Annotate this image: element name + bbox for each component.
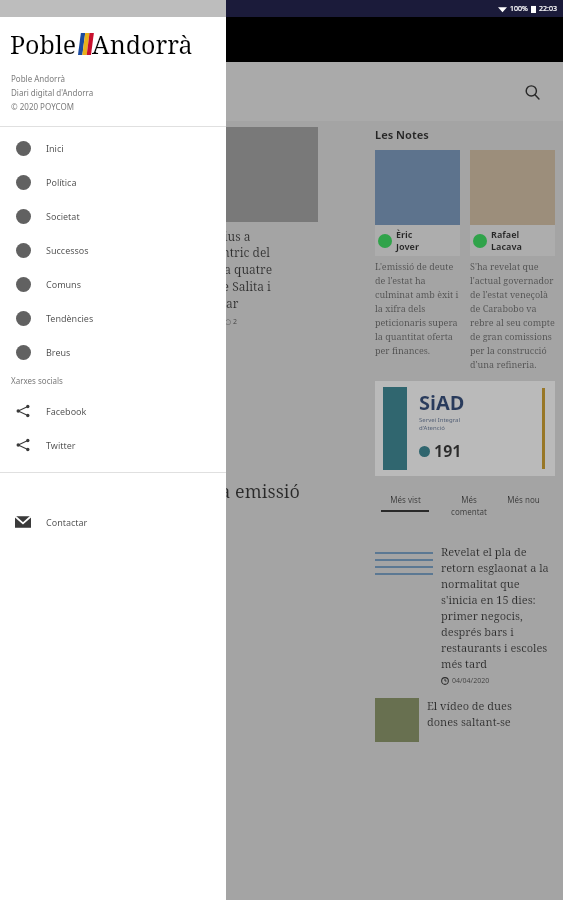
staticText: t'interessa interessos xyxy=(14,400,44,417)
staticText: Més comentat xyxy=(451,494,487,518)
staticText: Les Notes xyxy=(375,127,429,142)
staticText: Successos xyxy=(46,244,89,256)
staticText: Espanya aprova una nova emissió per fina… xyxy=(8,238,135,292)
button[interactable]: Breus xyxy=(0,335,226,369)
staticText: Facebook xyxy=(46,405,87,417)
button[interactable]: Més nou xyxy=(501,490,546,509)
staticText: Andorrà xyxy=(92,27,193,61)
button[interactable]: Search xyxy=(515,75,549,109)
button[interactable]: Contactar xyxy=(0,505,226,539)
button[interactable]: Societat xyxy=(0,199,226,233)
staticText: © 2020 POYCOM xyxy=(11,101,74,112)
staticText: Més vist xyxy=(390,494,421,505)
staticText: ○ 2 xyxy=(225,317,237,327)
button[interactable]: Rafael Lacava xyxy=(470,150,555,371)
staticText: Xarxes socials xyxy=(11,375,63,386)
button[interactable]: Èric Jover xyxy=(375,150,460,357)
staticText: SiAD xyxy=(419,389,465,416)
button[interactable]: Facebook xyxy=(0,394,226,428)
staticText: Diari digital d'Andorra xyxy=(11,87,94,98)
staticText: Poble Andorrà xyxy=(11,73,66,84)
button[interactable]: INTERESSA xyxy=(8,367,183,449)
button[interactable]: Política xyxy=(0,165,226,199)
staticText: Breus xyxy=(46,346,71,358)
staticText: Èric Jover xyxy=(396,228,419,253)
staticText: Inici xyxy=(46,142,64,154)
staticText: Espanya aprova una nova emissió per fina… xyxy=(8,479,300,530)
button[interactable]: Twitter xyxy=(0,428,226,462)
staticText: El vídeo de dues dones saltant-se xyxy=(427,698,512,729)
staticText: Política xyxy=(46,176,77,188)
staticText: Contactar xyxy=(46,516,88,528)
staticText: INTERESSA xyxy=(14,379,84,397)
button[interactable]: Comuns xyxy=(0,267,226,301)
staticText: 04/04/2020 xyxy=(452,676,490,686)
staticText: Revelat el pla de retorn esglaonat a la … xyxy=(441,544,555,671)
button[interactable]: SiAD xyxy=(375,381,555,476)
staticText: S'ha revelat que l'actual governador de … xyxy=(470,260,555,371)
staticText: Cinc positius a l'Hotel Cèntric del qual… xyxy=(168,228,273,312)
staticText: Societat xyxy=(46,210,80,222)
staticText: Twitter xyxy=(46,439,76,451)
button[interactable]: Tendències xyxy=(0,301,226,335)
button[interactable]: Successos xyxy=(0,233,226,267)
staticText: Poble xyxy=(14,74,83,109)
button[interactable]: Inici xyxy=(0,131,226,165)
staticText: 22:03 xyxy=(539,4,557,14)
staticText: Poble xyxy=(10,27,77,61)
staticText: Comuns xyxy=(46,278,81,290)
staticText: Més nou xyxy=(507,494,540,505)
staticText: Tendències xyxy=(46,312,94,324)
button[interactable]: Més comentat xyxy=(445,490,493,522)
staticText: Servei Integral d'Atenció xyxy=(419,416,460,432)
staticText: L'emissió de deute de l'estat ha culmina… xyxy=(375,260,460,357)
staticText: Rafael Lacava xyxy=(491,228,522,253)
staticText: 191 xyxy=(434,440,462,462)
button[interactable]: Més vist xyxy=(375,490,435,516)
staticText: 100% xyxy=(510,4,528,14)
